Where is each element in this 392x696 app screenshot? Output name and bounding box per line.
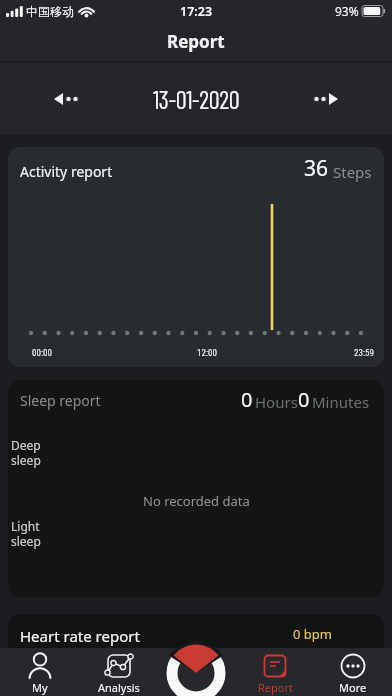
button[interactable]: Analysis <box>79 648 158 696</box>
staticText: Report <box>258 680 293 695</box>
staticText: 13-01-2020 <box>153 84 240 113</box>
staticText: 00:00 <box>32 348 52 359</box>
staticText: Hours <box>255 392 298 412</box>
staticText: 中国移动 <box>26 4 74 19</box>
button[interactable] <box>304 81 348 117</box>
button[interactable]: Heart rate report <box>8 614 384 696</box>
staticText: Light sleep <box>11 518 41 549</box>
staticText: My <box>32 680 48 695</box>
staticText: Report <box>167 30 225 53</box>
staticText: Steps <box>333 162 372 182</box>
staticText: Analysis <box>98 680 140 695</box>
button[interactable]: Activity report <box>8 147 384 367</box>
staticText: More <box>339 680 367 695</box>
staticText: 0 bpm <box>293 625 332 643</box>
staticText: Sleep report <box>20 391 101 410</box>
staticText: Activity report <box>20 162 113 181</box>
staticText: Minutes <box>312 392 370 412</box>
button[interactable] <box>160 638 232 686</box>
staticText: 93% <box>335 3 359 19</box>
staticText: Heart rate report <box>20 626 140 646</box>
staticText: 36 <box>304 154 329 183</box>
staticText: Deep sleep <box>11 437 41 468</box>
button[interactable]: Sleep report <box>8 380 384 597</box>
staticText: 17:23 <box>180 3 213 20</box>
staticText: 0 <box>298 386 310 413</box>
staticText: 23:59 <box>354 348 374 359</box>
staticText: 0 <box>241 386 253 413</box>
button[interactable] <box>44 81 88 117</box>
button[interactable]: More <box>314 648 392 696</box>
staticText: No recorded data <box>143 492 250 510</box>
staticText: 12:00 <box>197 348 217 359</box>
button[interactable]: Report <box>236 648 314 696</box>
button[interactable]: My <box>0 648 79 696</box>
